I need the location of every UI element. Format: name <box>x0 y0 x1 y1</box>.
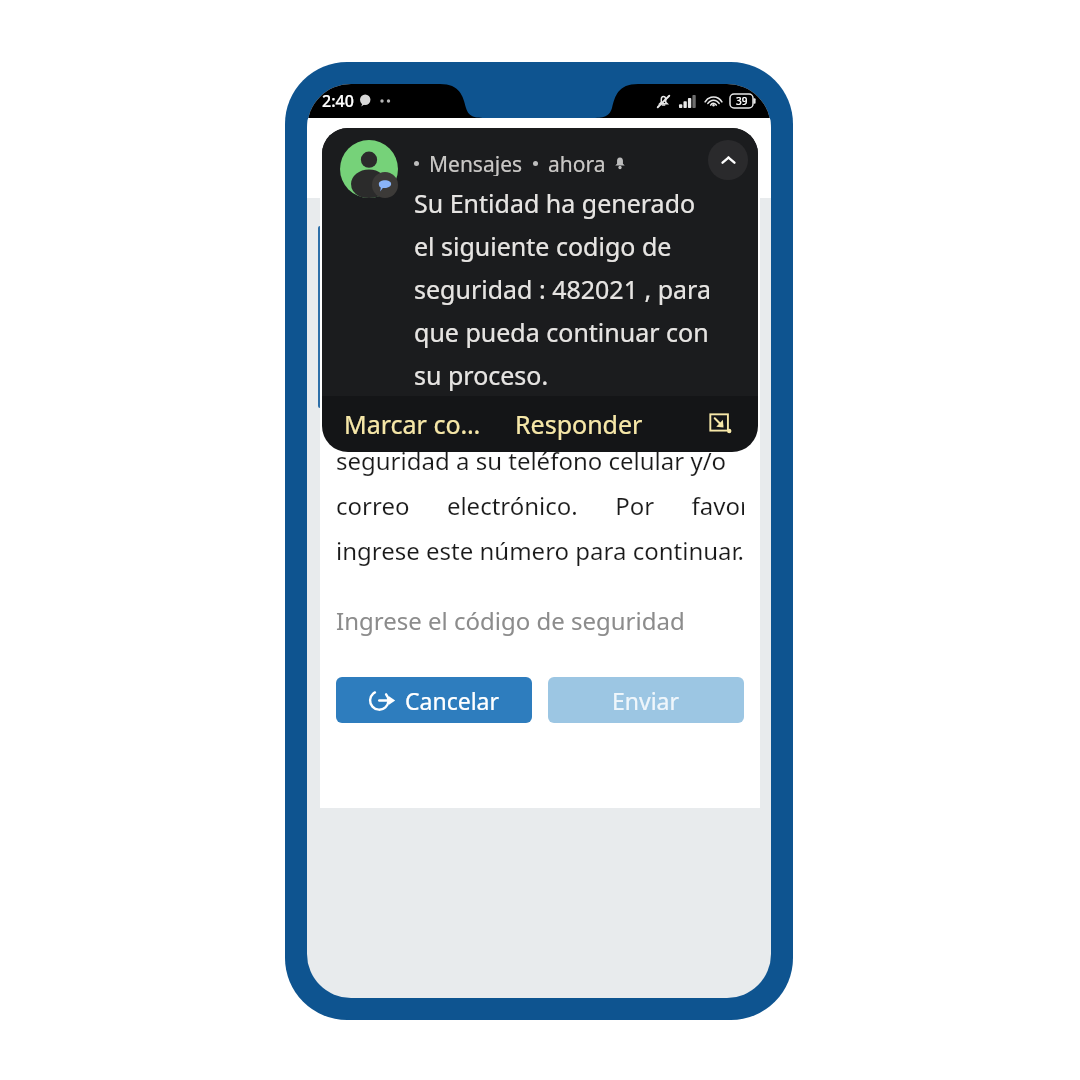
staticText: Ingrese el código de seguridad <box>336 604 685 637</box>
button[interactable]: Cancelar <box>336 677 532 723</box>
button[interactable]: Abrir en ventana flotante <box>700 404 740 444</box>
staticText: Cancelar <box>405 685 500 716</box>
button[interactable]: Enviar <box>548 677 744 723</box>
staticText: el siguiente codigo de <box>414 229 672 263</box>
staticText: seguridad a su teléfono celular y/o <box>336 444 727 477</box>
staticText: seguridad : 482021 , para <box>414 272 711 306</box>
button[interactable]: Marcar co… <box>344 396 481 452</box>
staticText: Su Entidad ha generado <box>414 186 696 220</box>
staticText: Mensajes <box>429 150 523 176</box>
staticText: ahora <box>548 150 606 176</box>
staticText: su proceso. <box>414 358 549 392</box>
button[interactable]: Contraer notificación <box>708 140 748 180</box>
staticText: Marcar co… <box>344 407 481 441</box>
staticText: ingrese este número para continuar. <box>336 534 744 567</box>
staticText: que pueda continuar con <box>414 315 709 349</box>
staticText: 39 <box>736 94 748 108</box>
staticText: Enviar <box>612 685 680 716</box>
staticText: correo electrónico. Por favor <box>336 489 744 522</box>
staticText: Responder <box>515 407 643 441</box>
staticText: 2:40 <box>322 90 354 112</box>
button[interactable]: Responder <box>515 396 643 452</box>
button[interactable]: Ingrese el código de seguridad <box>336 597 744 643</box>
